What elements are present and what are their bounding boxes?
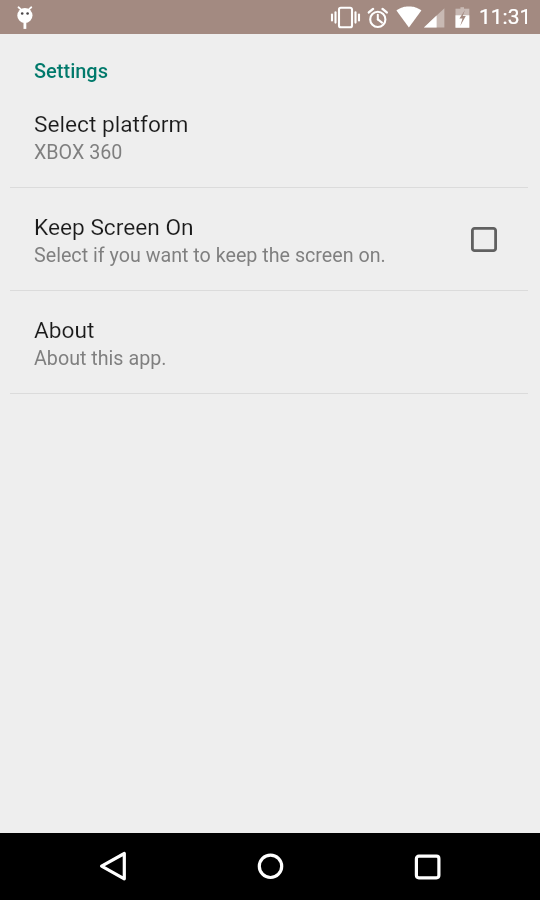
button[interactable]: Keep Screen On checkbox [462,217,506,261]
staticText: Select if you want to keep the screen on… [34,244,386,267]
staticText: 11:31 [479,5,532,30]
button[interactable]: About [0,291,540,393]
staticText: Select platform [34,111,189,138]
staticText: Settings [34,59,109,82]
button[interactable]: Back [77,833,148,900]
button[interactable]: Select platform [0,85,540,187]
button[interactable]: Keep Screen On [0,188,540,290]
button[interactable]: Home [235,833,306,900]
staticText: About this app. [34,347,167,370]
button[interactable]: Recent apps [392,833,463,900]
staticText: XBOX 360 [34,141,123,164]
staticText: About [34,317,95,344]
staticText: Keep Screen On [34,214,194,241]
